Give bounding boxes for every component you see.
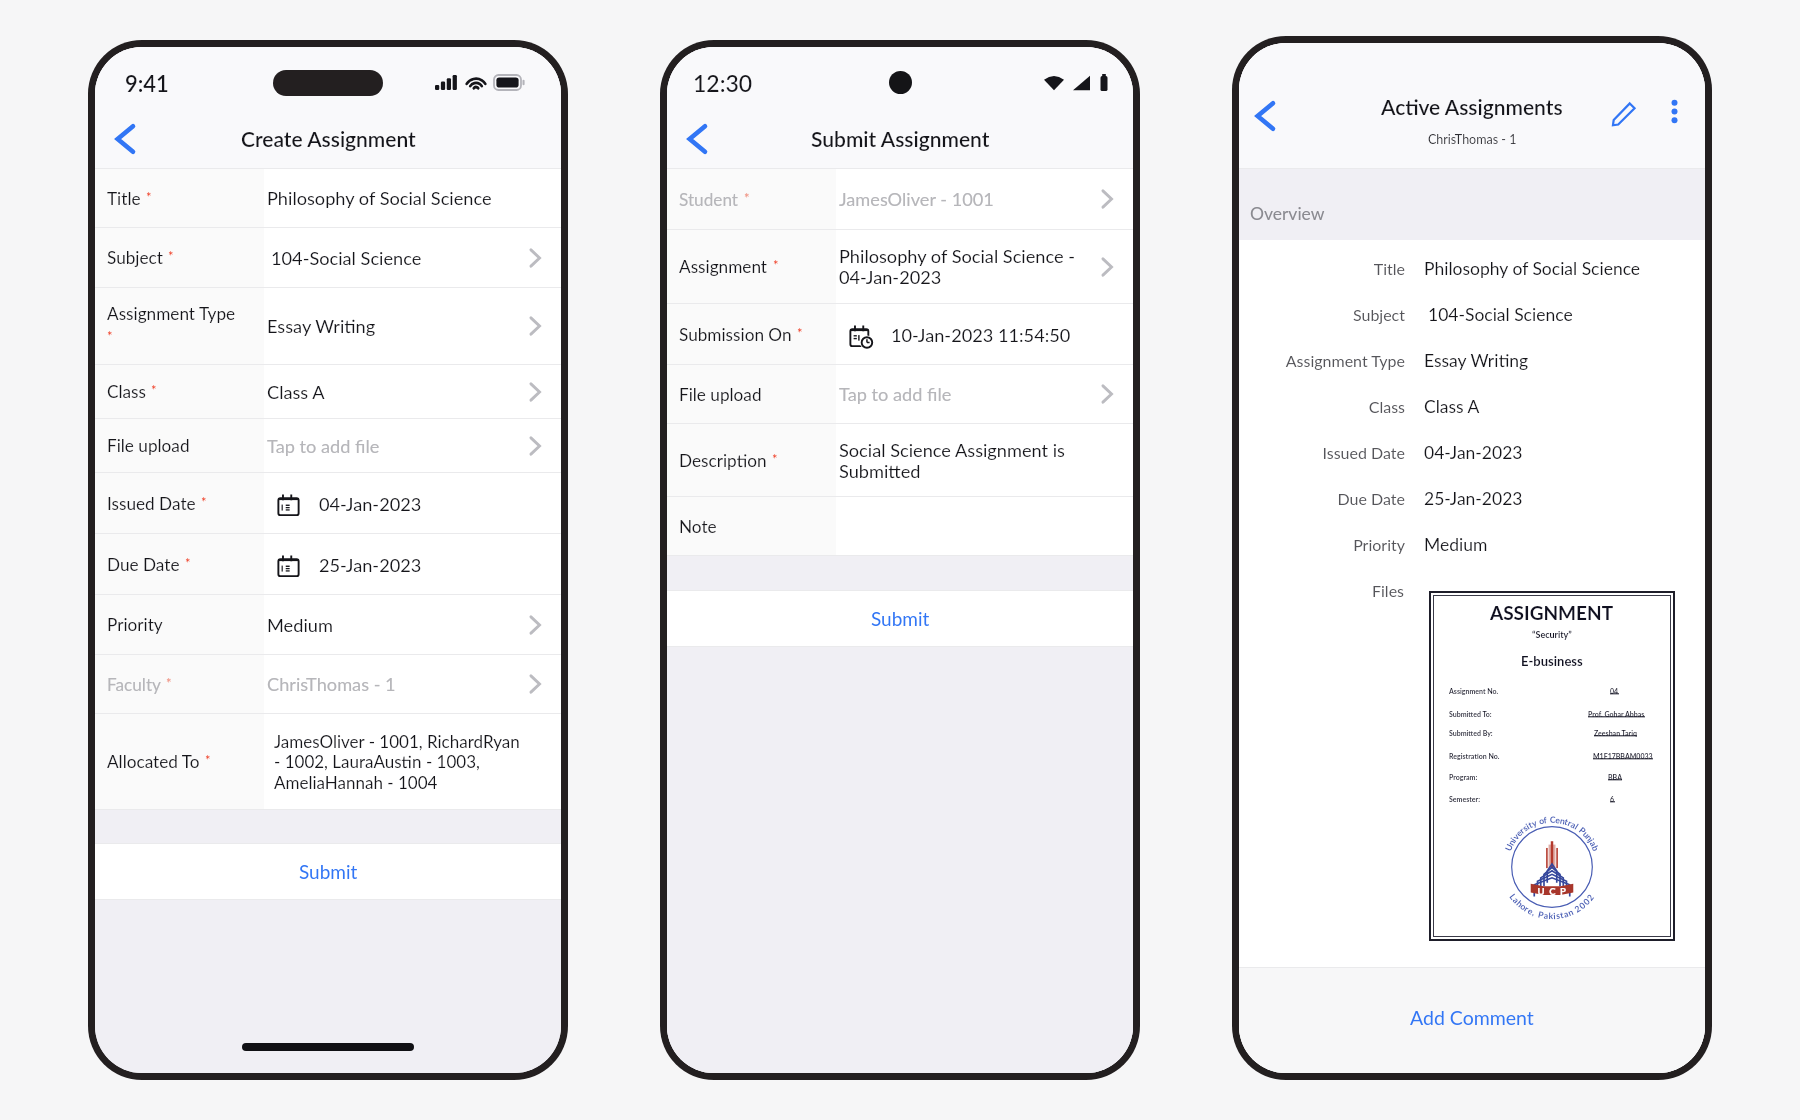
staticText: Subject [1352, 305, 1405, 324]
staticText: 10-Jan-2023 11:54:50 [891, 324, 1071, 346]
staticText: * [772, 451, 778, 467]
staticText: ChrisThomas - 1 [267, 673, 396, 695]
staticText: Philosophy of Social Science [1424, 258, 1641, 279]
button[interactable]: Student [667, 169, 1133, 229]
button[interactable]: File upload [95, 419, 561, 472]
staticText: 25-Jan-2023 [319, 554, 422, 576]
staticText: Essay Writing [267, 315, 376, 337]
button[interactable]: Description [667, 424, 1133, 496]
staticText: Class A [267, 381, 325, 403]
staticText: Due Date [107, 554, 180, 575]
staticText: 04-Jan-2023 [1424, 442, 1523, 463]
staticText: JamesOliver - 1001, RichardRyan - 1002, … [274, 731, 520, 793]
staticText: BBA [1608, 773, 1622, 781]
staticText: Issued Date [107, 493, 196, 514]
staticText: Class [1368, 397, 1405, 416]
button[interactable]: File upload [667, 365, 1133, 423]
staticText: Add Comment [1410, 1006, 1534, 1029]
staticText: Assignment Type [107, 303, 236, 324]
button[interactable]: Edit [1601, 91, 1647, 137]
staticText: Submit [871, 607, 930, 630]
button[interactable]: Submission On [667, 304, 1133, 364]
staticText: Prof. Gohar Abbas [1588, 710, 1645, 718]
button[interactable]: Class [95, 365, 561, 418]
button[interactable]: Priority [95, 595, 561, 654]
staticText: M1F17BBAM0033 [1593, 752, 1653, 760]
staticText: 04-Jan-2023 [319, 493, 422, 515]
staticText: Note [679, 516, 717, 537]
staticText: Assignment No. [1449, 687, 1499, 695]
staticText: Subject [107, 247, 163, 268]
staticText: Assignment Type [1285, 351, 1405, 370]
staticText: Create Assignment [241, 126, 416, 151]
staticText: Registration No. [1449, 752, 1500, 760]
staticText: JamesOliver - 1001 [839, 188, 994, 210]
staticText: Assignment [679, 256, 768, 277]
staticText: * [205, 752, 211, 768]
staticText: Essay Writing [1424, 350, 1529, 371]
staticText: ASSIGNMENT [1490, 601, 1614, 624]
staticText: Files [1372, 581, 1405, 600]
staticText: File upload [679, 384, 762, 405]
staticText: Submit [299, 860, 358, 883]
staticText: Zeeshan Tariq [1594, 729, 1637, 737]
button[interactable]: Back [674, 116, 720, 162]
button[interactable]: Due Date [95, 534, 561, 594]
staticText: * [146, 189, 152, 205]
staticText: * [744, 190, 750, 206]
staticText: 6 [1610, 795, 1615, 803]
staticText: * [168, 248, 174, 264]
staticText: Social Science Assignment is Submitted [839, 439, 1065, 482]
staticText: E-business [1521, 653, 1583, 669]
staticText: Title [1373, 259, 1405, 278]
staticText: Submission On [679, 324, 792, 345]
button[interactable]: Back [102, 116, 148, 162]
staticText: * [107, 328, 113, 344]
staticText: Tap to add file [267, 435, 380, 457]
staticText: * [773, 257, 779, 273]
staticText: Submitted By: [1449, 729, 1493, 737]
button[interactable]: Back [1242, 93, 1288, 139]
staticText: Due Date [1337, 489, 1405, 508]
button[interactable]: Allocated To [95, 714, 561, 809]
staticText: Active Assignments [1381, 94, 1563, 119]
button[interactable]: More options [1654, 91, 1694, 131]
staticText: 104-Social Science [271, 247, 422, 269]
staticText: Medium [267, 614, 333, 636]
staticText: Title [107, 188, 141, 209]
staticText: 9:41 [125, 70, 169, 96]
staticText: Priority [1353, 535, 1405, 554]
button[interactable]: Assignment attachment preview [1429, 591, 1675, 941]
button[interactable]: Note [667, 497, 1133, 555]
button[interactable]: Submit [95, 844, 561, 899]
button[interactable]: Add Comment [1239, 968, 1705, 1073]
staticText: * [797, 325, 803, 341]
button[interactable]: Assignment Type [95, 288, 561, 364]
staticText: * [201, 494, 207, 510]
staticText: 104-Social Science [1428, 304, 1573, 325]
staticText: Overview [1250, 203, 1325, 224]
staticText: Medium [1424, 534, 1488, 555]
button[interactable]: Title [95, 169, 561, 227]
staticText: Student [679, 189, 739, 210]
staticText: Submit Assignment [811, 126, 990, 151]
button[interactable]: Submit [667, 591, 1133, 646]
staticText: * [151, 382, 157, 398]
staticText: Tap to add file [839, 383, 952, 405]
staticText: Semester: [1449, 795, 1480, 803]
staticText: Faculty [107, 674, 161, 695]
button[interactable]: Assignment [667, 230, 1133, 303]
staticText: * [185, 555, 191, 571]
staticText: Priority [107, 614, 163, 635]
staticText: Philosophy of Social Science - 04-Jan-20… [839, 245, 1075, 288]
button[interactable]: Faculty [95, 655, 561, 713]
staticText: 12:30 [693, 69, 753, 97]
button[interactable]: Subject [95, 228, 561, 287]
staticText: 04 [1610, 687, 1619, 695]
staticText: Issued Date [1322, 443, 1405, 462]
staticText: File upload [107, 435, 190, 456]
staticText: Submitted To: [1449, 710, 1492, 718]
staticText: Allocated To [107, 751, 200, 772]
button[interactable]: Issued Date [95, 473, 561, 533]
staticText: Philosophy of Social Science [267, 187, 492, 209]
